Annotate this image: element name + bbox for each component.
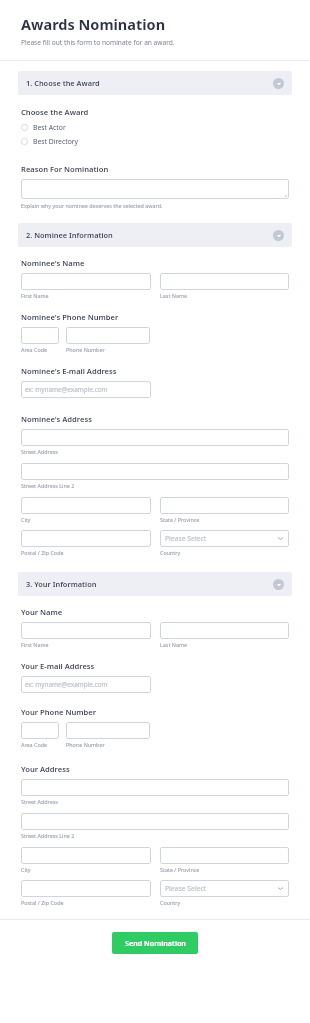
other: Collapse section	[273, 579, 284, 590]
staticText: Choose the Award	[21, 107, 89, 117]
button[interactable]	[21, 880, 151, 897]
staticText: Your Phone Number	[21, 707, 97, 717]
button[interactable]	[21, 530, 151, 547]
button[interactable]: ex: myname@example.com	[21, 676, 151, 693]
staticText: Area Code	[21, 346, 66, 353]
other: Collapse section	[273, 230, 284, 241]
button[interactable]: Please Select	[160, 530, 289, 547]
staticText: Your Name	[21, 607, 63, 617]
staticText: Country	[160, 899, 181, 906]
staticText: First Name	[21, 641, 49, 648]
staticText: Last Name	[160, 292, 187, 299]
button[interactable]	[160, 273, 289, 290]
button[interactable]	[21, 179, 289, 199]
staticText: 3. Your Information	[26, 579, 273, 589]
staticText: Nominee's Phone Number	[21, 312, 119, 322]
staticText: Postal / Zip Code	[21, 899, 64, 906]
staticText: Nominee's E-mail Address	[21, 366, 117, 376]
staticText: Street Address Line 2	[21, 832, 75, 839]
button[interactable]: ex: myname@example.com	[21, 381, 151, 398]
staticText: ex: myname@example.com	[25, 385, 108, 394]
button[interactable]	[21, 622, 151, 639]
staticText: Street Address	[21, 798, 58, 805]
button[interactable]	[21, 722, 59, 739]
staticText: Awards Nomination	[21, 14, 166, 34]
button[interactable]: Send Nomination	[112, 932, 198, 954]
button[interactable]	[21, 327, 59, 344]
staticText: First Name	[21, 292, 49, 299]
staticText: Nominee's Address	[21, 414, 92, 424]
staticText: Nominee's Name	[21, 258, 85, 268]
button[interactable]	[21, 779, 289, 796]
other: Open country list	[277, 535, 284, 542]
staticText: Send Nomination	[125, 938, 186, 948]
staticText: Phone Number	[66, 346, 105, 353]
button[interactable]	[66, 327, 150, 344]
staticText: Postal / Zip Code	[21, 549, 64, 556]
button[interactable]	[66, 722, 150, 739]
staticText: Area Code	[21, 741, 66, 748]
staticText: Last Name	[160, 641, 187, 648]
staticText: City	[21, 866, 31, 873]
button[interactable]: 3. Your Information	[18, 572, 292, 596]
button[interactable]: 2. Nominee Information	[18, 223, 292, 247]
staticText: Street Address	[21, 448, 58, 455]
button[interactable]: Best Directory	[21, 135, 289, 147]
staticText: Street Address Line 2	[21, 482, 75, 489]
button[interactable]	[21, 813, 289, 830]
button[interactable]	[21, 847, 151, 864]
button[interactable]	[21, 463, 289, 480]
staticText: ex: myname@example.com	[25, 680, 108, 689]
button[interactable]	[160, 497, 289, 514]
button[interactable]	[21, 497, 151, 514]
button[interactable]: Please Select	[160, 880, 289, 897]
staticText: State / Province	[160, 516, 200, 523]
button[interactable]	[21, 273, 151, 290]
button[interactable]	[160, 847, 289, 864]
button[interactable]: Best Actor	[21, 121, 289, 133]
staticText: Best Actor	[33, 123, 66, 132]
staticText: Please Select	[165, 884, 207, 893]
staticText: Phone Number	[66, 741, 105, 748]
other: Collapse section	[273, 78, 284, 89]
button[interactable]: 1. Choose the Award	[18, 71, 292, 95]
button[interactable]	[21, 429, 289, 446]
other: Open country list	[277, 885, 284, 892]
staticText: 2. Nominee Information	[26, 230, 273, 240]
staticText: Best Directory	[33, 137, 79, 146]
staticText: Please fill out this form to nominate fo…	[21, 38, 175, 47]
staticText: 1. Choose the Award	[26, 78, 273, 88]
staticText: Please Select	[165, 534, 207, 543]
staticText: Your Address	[21, 764, 70, 774]
staticText: City	[21, 516, 31, 523]
button[interactable]	[160, 622, 289, 639]
staticText: Reason For Nomination	[21, 164, 109, 174]
staticText: State / Province	[160, 866, 200, 873]
staticText: Your E-mail Address	[21, 661, 95, 671]
staticText: Explain why your nominee deserves the se…	[21, 202, 163, 209]
staticText: Country	[160, 549, 181, 556]
